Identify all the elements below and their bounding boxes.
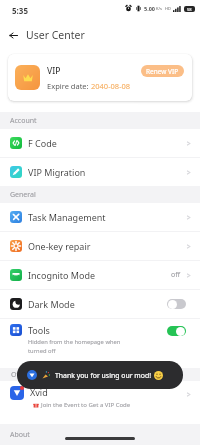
- staticText: Join the Event to Get a VIP Code: [41, 401, 131, 409]
- staticText: Dark Mode: [28, 298, 75, 310]
- staticText: Thank you for using our mod!: [55, 371, 151, 380]
- button[interactable]: Task Management: [0, 203, 200, 231]
- button[interactable]: Thank you for using our mod!: [17, 361, 183, 389]
- staticText: Expire date:: [47, 81, 91, 91]
- button[interactable]: Xvid: [0, 381, 200, 424]
- button[interactable]: Dark Mode: [0, 290, 200, 318]
- staticText: K/s: [156, 6, 162, 11]
- button[interactable]: Back: [0, 22, 26, 48]
- staticText: Account: [10, 116, 37, 126]
- staticText: Tools: [28, 324, 50, 336]
- button[interactable]: Renew VIP: [141, 65, 184, 77]
- staticText: Others: [11, 370, 34, 380]
- staticText: Task Management: [28, 211, 106, 223]
- button[interactable]: VIP Migration: [0, 158, 200, 186]
- staticText: 2040-08-08: [91, 81, 131, 91]
- staticText: HD: [165, 6, 171, 11]
- button[interactable]: Incognito Mode: [0, 261, 200, 289]
- staticText: Incognito Mode: [28, 269, 96, 281]
- button[interactable]: Toggle on: [167, 326, 186, 336]
- staticText: About: [10, 430, 30, 440]
- staticText: VIP: [47, 65, 61, 77]
- staticText: 5.00: [144, 5, 155, 12]
- button[interactable]: One-key repair: [0, 232, 200, 260]
- staticText: One-key repair: [28, 240, 91, 252]
- button[interactable]: Tools: [0, 319, 200, 368]
- staticText: 5:35: [12, 5, 28, 16]
- staticText: General: [10, 190, 36, 200]
- staticText: Xvid: [30, 386, 48, 398]
- button[interactable]: F Code: [0, 129, 200, 157]
- staticText: Hidden from the homepage when turned off: [28, 338, 121, 355]
- staticText: VIP Migration: [28, 166, 86, 178]
- staticText: 58: [187, 7, 192, 12]
- button[interactable]: VIP: [8, 54, 192, 101]
- staticText: Renew VIP: [146, 67, 179, 76]
- staticText: User Center: [26, 28, 85, 42]
- staticText: off: [171, 270, 181, 280]
- button[interactable]: Toggle off: [167, 299, 186, 309]
- staticText: F Code: [28, 137, 57, 149]
